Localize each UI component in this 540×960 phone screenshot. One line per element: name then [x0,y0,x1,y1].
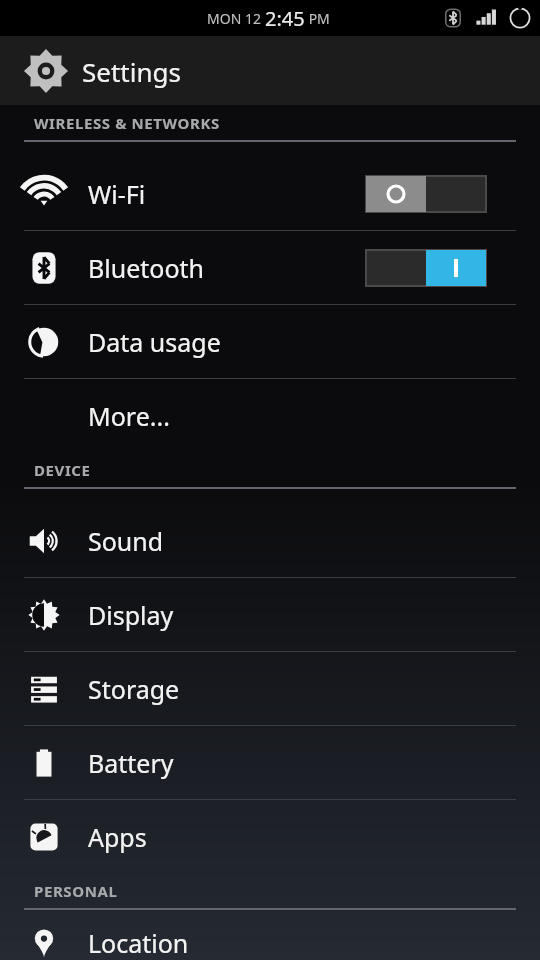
staticText: WIRELESS & NETWORKS [34,113,220,133]
staticText: DEVICE [34,460,91,480]
button[interactable]: Battery [0,726,540,799]
button[interactable]: Toggle on [366,248,486,288]
button[interactable]: Storage [0,652,540,725]
staticText: Storage [88,672,180,706]
button[interactable]: Toggle off [366,174,486,214]
staticText: Battery [88,746,174,780]
staticText: Wi-Fi [88,177,146,211]
staticText: 2:45 [265,5,305,32]
staticText: MON 12 [207,9,265,28]
staticText: Settings [82,54,181,89]
button[interactable]: Apps [0,800,540,873]
staticText: Bluetooth [88,251,205,285]
button[interactable]: Location [0,925,540,960]
staticText: More... [88,399,170,433]
button[interactable]: Bluetooth [0,231,540,304]
staticText: Sound [88,524,164,558]
button[interactable]: Sound [0,504,540,577]
button[interactable]: Display [0,578,540,651]
staticText: Data usage [88,325,221,359]
button[interactable]: More... [0,379,540,452]
staticText: Location [88,926,189,960]
staticText: PERSONAL [34,881,118,901]
staticText: PM [305,9,330,28]
button[interactable]: Wi-Fi [0,157,540,230]
staticText: Display [88,598,174,632]
button[interactable]: Data usage [0,305,540,378]
staticText: Apps [88,820,147,854]
